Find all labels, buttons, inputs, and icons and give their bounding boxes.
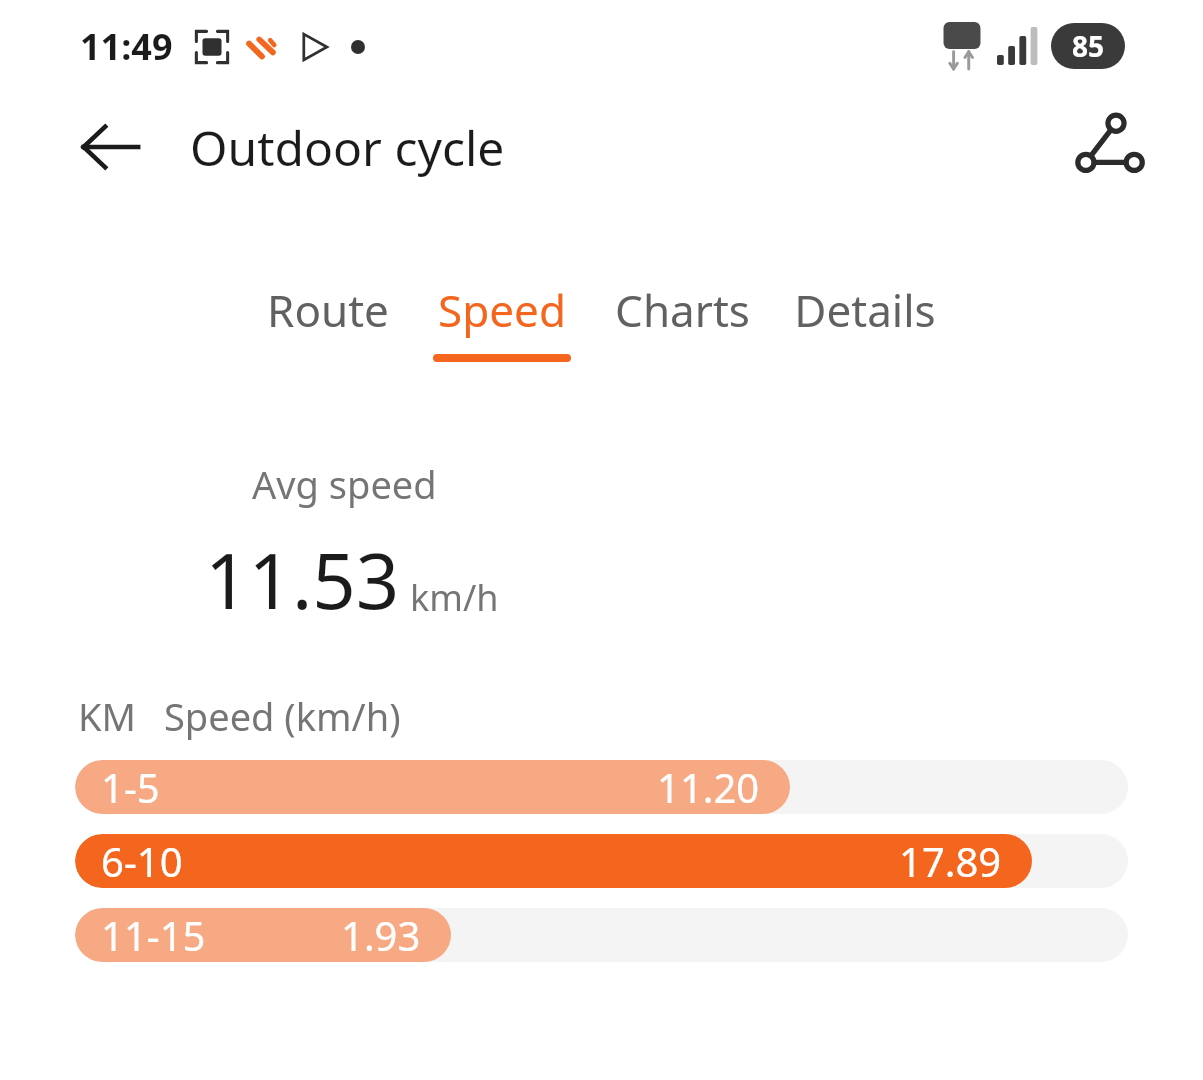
button[interactable]: 11-15 [75,908,1128,962]
staticText: 85 [1072,27,1105,65]
staticText: 17.89 [899,834,1002,888]
button[interactable]: Details [794,280,936,362]
staticText: 11.20 [657,760,760,814]
button[interactable]: Charts [615,280,750,362]
staticText: Details [794,280,936,340]
button[interactable]: Share [1063,101,1155,193]
button[interactable]: 1-5 [75,760,1128,814]
staticText: KM [78,690,136,742]
staticText: Outdoor cycle [190,115,505,180]
button[interactable]: Back [62,99,158,195]
staticText: Charts [615,280,750,340]
button[interactable]: Speed [433,280,571,362]
staticText: 1.93 [341,908,421,962]
staticText: Avg speed [252,458,437,510]
button[interactable]: 6-10 [75,834,1128,888]
staticText: Speed [438,280,566,340]
staticText: 11.53 [205,528,400,632]
staticText: 11:49 [80,22,173,71]
staticText: km/h [410,573,499,622]
staticText: 1-5 [101,760,160,814]
staticText: Speed (km/h) [164,690,401,742]
staticText: 6-10 [101,834,183,888]
staticText: Route [267,280,389,340]
button[interactable]: Route [267,280,389,362]
staticText: 11-15 [101,908,206,962]
